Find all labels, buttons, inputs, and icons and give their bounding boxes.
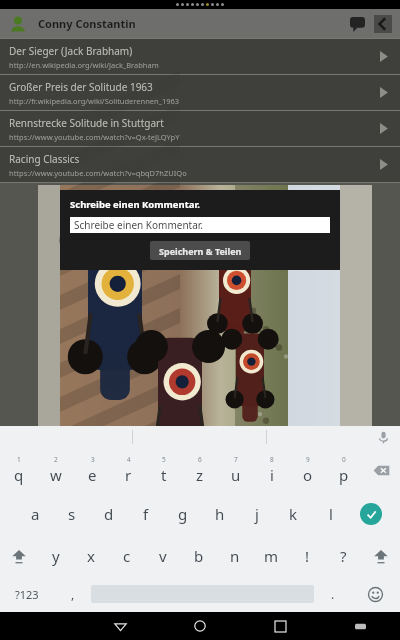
button[interactable]: b bbox=[181, 536, 217, 576]
button[interactable]: Play bbox=[366, 147, 400, 182]
button[interactable]: 8 bbox=[254, 448, 290, 492]
button[interactable]: Großer Preis der Solitude 1963 bbox=[0, 75, 400, 110]
button[interactable]: c bbox=[109, 536, 145, 576]
staticText: q bbox=[14, 465, 24, 485]
staticText: e bbox=[88, 465, 97, 485]
button[interactable]: ? bbox=[325, 536, 361, 576]
button[interactable]: Racing Classics bbox=[0, 147, 400, 182]
staticText: c bbox=[123, 546, 131, 566]
staticText: a bbox=[31, 504, 40, 524]
button[interactable]: Schreibe einen Kommentar. bbox=[70, 217, 330, 233]
button[interactable]: Enter bbox=[349, 492, 393, 536]
button[interactable]: 7 bbox=[218, 448, 254, 492]
staticText: m bbox=[264, 546, 279, 566]
staticText: 9 bbox=[306, 455, 310, 464]
staticText: 8 bbox=[270, 455, 274, 464]
button[interactable]: Play bbox=[366, 75, 400, 110]
button[interactable]: 1 bbox=[0, 448, 37, 492]
staticText: https://www.youtube.com/watch?v=Qx-teJLQ… bbox=[9, 132, 180, 142]
staticText: Schreibe einen Kommentar. bbox=[70, 198, 200, 211]
staticText: 1 bbox=[17, 455, 21, 464]
button[interactable]: 9 bbox=[290, 448, 326, 492]
button[interactable]: Shift bbox=[361, 536, 400, 576]
button[interactable]: Rennstrecke Solitude in Stuttgart bbox=[0, 111, 400, 146]
button[interactable]: n bbox=[217, 536, 253, 576]
button[interactable]: 0 bbox=[326, 448, 362, 492]
button[interactable]: 2 bbox=[37, 448, 74, 492]
staticText: 7 bbox=[234, 455, 238, 464]
button[interactable]: s bbox=[53, 492, 90, 536]
staticText: 3 bbox=[91, 455, 95, 464]
button[interactable]: Backspace bbox=[362, 448, 400, 492]
staticText: http://en.wikipedia.org/wiki/Jack_Brabha… bbox=[9, 60, 159, 70]
button[interactable]: x bbox=[73, 536, 109, 576]
staticText: p bbox=[339, 465, 349, 485]
staticText: Racing Classics bbox=[9, 152, 80, 166]
button[interactable]: Speichern & Teilen bbox=[150, 241, 250, 260]
staticText: k bbox=[289, 504, 298, 524]
staticText: y bbox=[52, 546, 60, 566]
button[interactable]: Play bbox=[366, 111, 400, 146]
button[interactable]: g bbox=[164, 492, 201, 536]
staticText: Rennstrecke Solitude in Stuttgart bbox=[9, 116, 164, 130]
button[interactable]: Back bbox=[370, 11, 396, 37]
staticText: , bbox=[71, 586, 75, 602]
button[interactable]: j bbox=[238, 492, 275, 536]
staticText: j bbox=[255, 504, 259, 524]
button[interactable]: Emoji bbox=[351, 576, 400, 612]
staticText: w bbox=[50, 465, 62, 485]
button[interactable]: Back bbox=[80, 612, 160, 640]
staticText: 2 bbox=[54, 455, 58, 464]
staticText: z bbox=[196, 465, 204, 485]
staticText: l bbox=[329, 504, 333, 524]
button[interactable]: . bbox=[314, 576, 351, 612]
staticText: v bbox=[159, 546, 167, 566]
staticText: 6 bbox=[198, 455, 202, 464]
staticText: f bbox=[143, 504, 149, 524]
staticText: Großer Preis der Solitude 1963 bbox=[9, 80, 153, 94]
button[interactable]: ! bbox=[289, 536, 325, 576]
button[interactable]: 4 bbox=[110, 448, 146, 492]
button[interactable]: m bbox=[253, 536, 289, 576]
button[interactable]: f bbox=[127, 492, 164, 536]
button[interactable]: k bbox=[275, 492, 312, 536]
button[interactable]: a bbox=[17, 492, 53, 536]
staticText: s bbox=[68, 504, 76, 524]
staticText: n bbox=[230, 546, 240, 566]
staticText: g bbox=[178, 504, 188, 524]
button[interactable]: h bbox=[201, 492, 238, 536]
button[interactable]: Switch keyboard bbox=[320, 612, 400, 640]
button[interactable]: 3 bbox=[74, 448, 110, 492]
staticText: 4 bbox=[127, 455, 131, 464]
button[interactable]: v bbox=[145, 536, 181, 576]
button[interactable]: 6 bbox=[182, 448, 218, 492]
staticText: ?123 bbox=[15, 587, 39, 602]
staticText: r bbox=[125, 465, 132, 485]
button[interactable]: y bbox=[38, 536, 73, 576]
staticText: u bbox=[231, 465, 241, 485]
staticText: Schreibe einen Kommentar. bbox=[74, 218, 204, 232]
button[interactable]: Comments bbox=[344, 11, 370, 37]
staticText: t bbox=[161, 465, 167, 485]
button[interactable]: Play bbox=[366, 39, 400, 74]
button[interactable]: d bbox=[90, 492, 127, 536]
button[interactable]: Voice input bbox=[366, 426, 400, 448]
button[interactable]: ?123 bbox=[0, 576, 54, 612]
button[interactable]: Shift bbox=[0, 536, 38, 576]
button[interactable]: Der Sieger (Jack Brabham) bbox=[0, 39, 400, 74]
button[interactable]: l bbox=[312, 492, 349, 536]
staticText: https://www.youtube.com/watch?v=qbqD7hZU… bbox=[9, 168, 187, 178]
button[interactable]: 5 bbox=[146, 448, 182, 492]
staticText: d bbox=[104, 504, 114, 524]
button[interactable]: , bbox=[54, 576, 91, 612]
button[interactable] bbox=[267, 426, 400, 448]
staticText: ? bbox=[340, 546, 347, 566]
button[interactable]: Home bbox=[160, 612, 240, 640]
staticText: 5 bbox=[162, 455, 166, 464]
staticText: o bbox=[303, 465, 313, 485]
staticText: 0 bbox=[342, 455, 346, 464]
button[interactable]: Recents bbox=[240, 612, 320, 640]
